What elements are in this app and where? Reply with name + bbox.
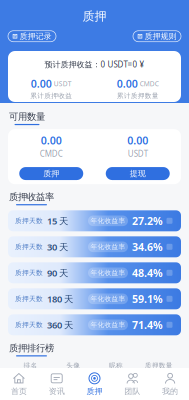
staticText: 年化收益率 bbox=[90, 243, 125, 251]
button[interactable]: 质押记录 bbox=[8, 31, 56, 42]
staticText: 质押天数 bbox=[15, 269, 43, 277]
staticText: 排名 bbox=[23, 361, 37, 370]
staticText: 0.00 bbox=[31, 77, 52, 91]
staticText: 质押天数 bbox=[15, 243, 43, 251]
staticText: 质押排行榜 bbox=[9, 342, 54, 354]
staticText: 15 天 bbox=[43, 215, 68, 227]
staticText: 180 天 bbox=[43, 293, 73, 305]
button[interactable]: 质押天数 bbox=[8, 288, 181, 309]
staticText: 质押数量 bbox=[145, 361, 173, 370]
staticText: 48.4% bbox=[132, 266, 163, 280]
staticText: 质押天数 bbox=[15, 217, 43, 225]
staticText: 质押 bbox=[43, 169, 59, 178]
staticText: USDT bbox=[128, 148, 148, 159]
staticText: 累计质押收益 bbox=[30, 92, 72, 100]
staticText: 资讯 bbox=[49, 386, 65, 396]
staticText: 0.00 bbox=[117, 77, 138, 91]
button[interactable]: 资讯 bbox=[38, 371, 76, 397]
staticText: 年化收益率 bbox=[90, 295, 125, 303]
staticText: 提现 bbox=[130, 169, 146, 178]
staticText: 累计质押数量 bbox=[117, 92, 159, 100]
staticText: 质押记录 bbox=[19, 31, 51, 41]
button[interactable]: 质押 bbox=[19, 167, 83, 180]
button[interactable]: 质押天数 bbox=[8, 236, 181, 257]
staticText: 59.1% bbox=[132, 292, 163, 306]
button[interactable]: 提现 bbox=[106, 167, 170, 180]
staticText: 预计质押收益：0 USDT=0 ¥ bbox=[44, 59, 144, 70]
button[interactable]: 首页 bbox=[0, 371, 38, 397]
button[interactable]: 质押天数 bbox=[8, 210, 181, 231]
staticText: 0.00 bbox=[41, 133, 62, 147]
staticText: 年化收益率 bbox=[90, 321, 125, 329]
button[interactable]: 团队 bbox=[113, 371, 151, 397]
staticText: 质押 bbox=[82, 9, 106, 24]
staticText: USDT bbox=[54, 79, 72, 88]
staticText: 质押天数 bbox=[15, 321, 43, 329]
staticText: 质押 bbox=[86, 386, 102, 396]
button[interactable]: 质押天数 bbox=[8, 314, 181, 335]
staticText: 34.6% bbox=[132, 240, 163, 254]
staticText: 90 天 bbox=[43, 267, 68, 279]
staticText: 质押规则 bbox=[144, 31, 176, 41]
staticText: 0.00 bbox=[127, 133, 148, 147]
staticText: 可用数量 bbox=[9, 111, 45, 122]
staticText: 头像 bbox=[66, 361, 80, 370]
staticText: CMDC bbox=[140, 79, 159, 88]
staticText: 年化收益率 bbox=[90, 269, 125, 277]
button[interactable]: 我的 bbox=[151, 371, 189, 397]
staticText: 昵称 bbox=[109, 361, 123, 370]
staticText: 我的 bbox=[162, 386, 178, 396]
button[interactable]: 质押 bbox=[76, 371, 113, 397]
staticText: 71.4% bbox=[132, 318, 163, 332]
staticText: 质押收益率 bbox=[9, 191, 54, 203]
staticText: 27.2% bbox=[132, 214, 163, 228]
staticText: 质押天数 bbox=[15, 295, 43, 303]
staticText: 360 天 bbox=[43, 319, 73, 331]
staticText: CMDC bbox=[40, 148, 63, 159]
button[interactable]: 质押规则 bbox=[133, 31, 181, 42]
staticText: 团队 bbox=[124, 386, 140, 396]
staticText: 年化收益率 bbox=[90, 217, 125, 225]
staticText: 30 天 bbox=[43, 241, 68, 253]
button[interactable]: 质押天数 bbox=[8, 262, 181, 283]
staticText: 首页 bbox=[11, 386, 27, 396]
